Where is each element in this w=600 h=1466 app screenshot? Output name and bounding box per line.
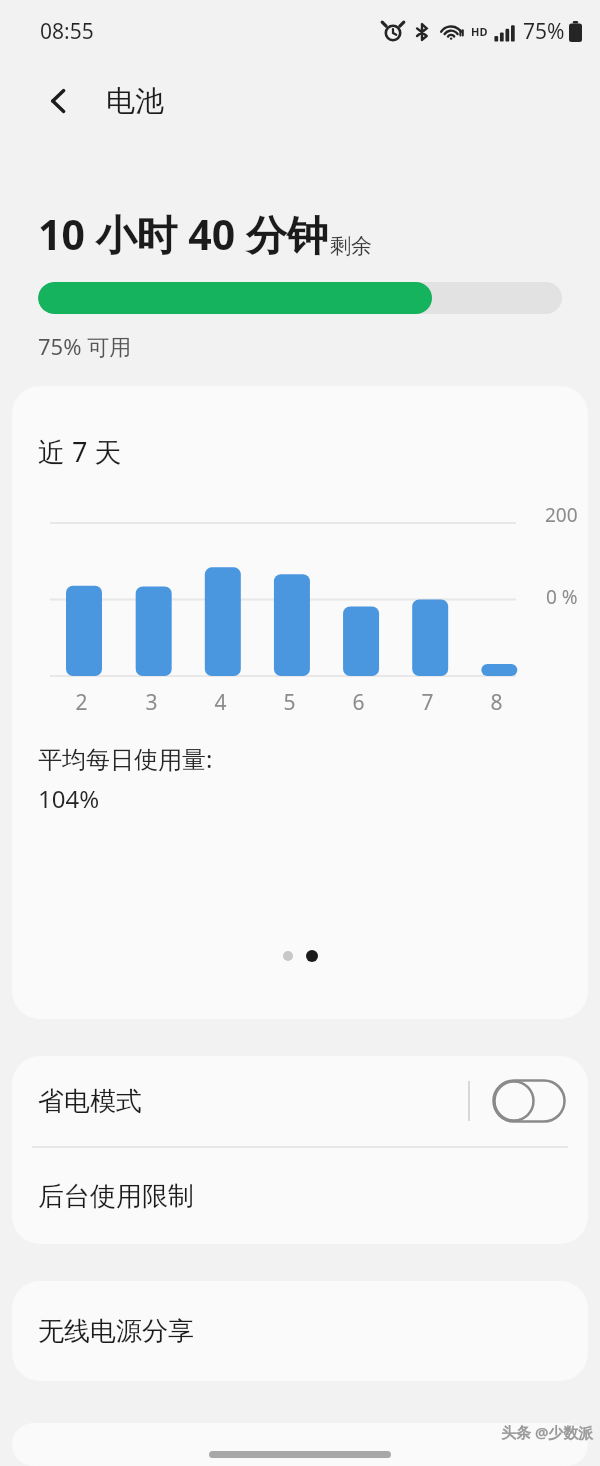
button[interactable]: 无线电源分享 — [12, 1281, 588, 1381]
staticText: 0 % — [546, 584, 578, 610]
button[interactable]: 近 7 天 — [12, 386, 588, 1019]
staticText: 200 — [545, 502, 578, 528]
staticText: 头条 @少数派 — [501, 1422, 594, 1442]
staticText: 2 — [75, 688, 88, 717]
staticText: 10 小时 40 分钟 — [38, 206, 328, 262]
button[interactable]: Back — [34, 76, 84, 126]
staticText: 剩余 — [330, 233, 372, 259]
staticText: 75% 可用 — [38, 331, 132, 361]
staticText: 无线电源分享 — [38, 1315, 194, 1348]
staticText: 6 — [352, 688, 365, 717]
button[interactable] — [12, 1423, 588, 1466]
staticText: 5 — [283, 688, 296, 717]
staticText: 近 7 天 — [38, 433, 122, 470]
staticText: HD — [471, 24, 488, 39]
button[interactable]: 省电模式 toggle — [492, 1079, 566, 1123]
button[interactable]: 后台使用限制 — [12, 1148, 588, 1244]
staticText: 8 — [490, 688, 503, 717]
staticText: 省电模式 — [38, 1085, 142, 1118]
staticText: 电池 — [106, 83, 164, 120]
button[interactable]: 省电模式 — [12, 1056, 588, 1146]
staticText: 104% — [38, 782, 100, 815]
staticText: 3 — [145, 688, 158, 717]
staticText: 平均每日使用量: — [38, 742, 213, 775]
staticText: 7 — [421, 688, 434, 717]
staticText: 4 — [214, 688, 227, 717]
staticText: 75% — [523, 17, 565, 46]
staticText: 08:55 — [40, 17, 94, 46]
staticText: 后台使用限制 — [38, 1180, 194, 1213]
